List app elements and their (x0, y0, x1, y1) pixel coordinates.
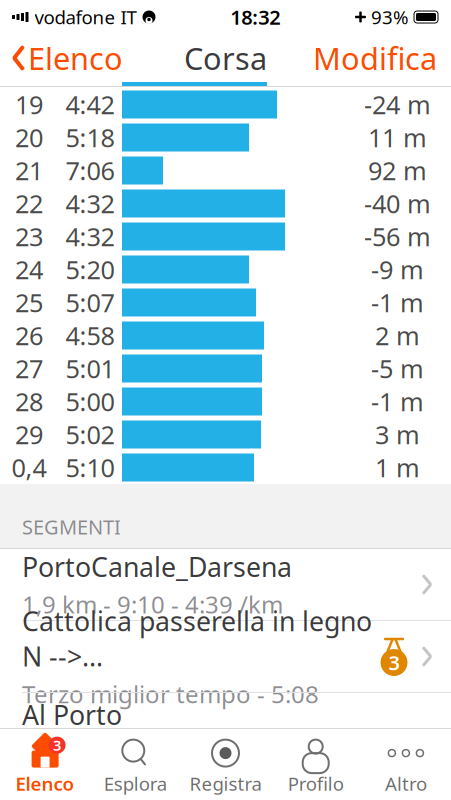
staticText: 24 (15, 253, 43, 286)
button[interactable]: PortoCanale_Darsena (0, 549, 451, 621)
staticText: Elenco (16, 771, 75, 796)
staticText: 28 (15, 385, 43, 418)
staticText: Elenco (28, 38, 123, 78)
staticText: Altro (385, 771, 427, 796)
staticText: 22 (15, 187, 43, 220)
staticText: 4:32 (65, 220, 114, 253)
staticText: 0,4 (11, 451, 46, 484)
staticText: 3 (53, 735, 61, 755)
staticText: 19 (15, 88, 43, 121)
staticText: Registra (189, 771, 261, 796)
staticText: -24 m (364, 88, 431, 121)
staticText: 27 (15, 352, 43, 385)
staticText: 20 (15, 121, 43, 154)
staticText: 2 m (375, 319, 420, 352)
button[interactable]: Elenco (0, 32, 123, 84)
staticText: 4:42 (65, 88, 114, 121)
staticText: 26 (15, 319, 43, 352)
staticText: 21 (15, 154, 43, 187)
staticText: 4:58 (65, 319, 114, 352)
staticText: 1 m (375, 451, 420, 484)
staticText: 29 (15, 418, 43, 451)
staticText: 3 (388, 649, 399, 676)
staticText: Esplora (104, 771, 167, 796)
staticText: SEGMENTI (22, 513, 121, 540)
button[interactable]: 3 (0, 733, 90, 796)
staticText: 3 m (375, 418, 420, 451)
staticText: 18:32 (230, 4, 280, 30)
staticText: Modifica (313, 38, 437, 78)
staticText: 93% (371, 5, 409, 29)
staticText: 4:32 (65, 187, 114, 220)
staticText: 5:07 (65, 286, 114, 319)
staticText: -1 m (371, 385, 424, 418)
staticText: 23 (15, 220, 43, 253)
staticText: 92 m (368, 154, 427, 187)
staticText: PortoCanale_Darsena (22, 549, 292, 584)
staticText: -40 m (364, 187, 431, 220)
staticText: 5:18 (65, 121, 114, 154)
staticText: Cattolica passerella in legno N -->… (22, 603, 372, 674)
staticText: -9 m (371, 253, 424, 286)
staticText: Profilo (288, 771, 344, 796)
staticText: 5:20 (65, 253, 114, 286)
staticText: 25 (15, 286, 43, 319)
staticText: Al Porto (22, 697, 122, 732)
staticText: -5 m (371, 352, 424, 385)
staticText: 1,9 km - 9:10 - 4:39 /km (22, 588, 283, 620)
button[interactable]: Registra (180, 733, 271, 796)
button[interactable]: Cattolica passerella in legno N -->… (0, 621, 451, 693)
staticText: 11 m (368, 121, 427, 154)
button[interactable]: Modifica (313, 32, 451, 84)
staticText: 7:06 (65, 154, 114, 187)
staticText: Terzo miglior tempo - 5:08 (22, 678, 319, 710)
staticText: 5:01 (65, 352, 114, 385)
staticText: 5:10 (65, 451, 114, 484)
staticText: vodafone IT (34, 5, 136, 29)
staticText: 5:00 (65, 385, 114, 418)
button[interactable]: Esplora (90, 733, 180, 796)
staticText: -1 m (371, 286, 424, 319)
button[interactable]: Profilo (271, 733, 361, 796)
staticText: 5:02 (65, 418, 114, 451)
button[interactable]: Altro (361, 733, 451, 796)
staticText: -56 m (364, 220, 431, 253)
staticText: Corsa (184, 38, 267, 78)
